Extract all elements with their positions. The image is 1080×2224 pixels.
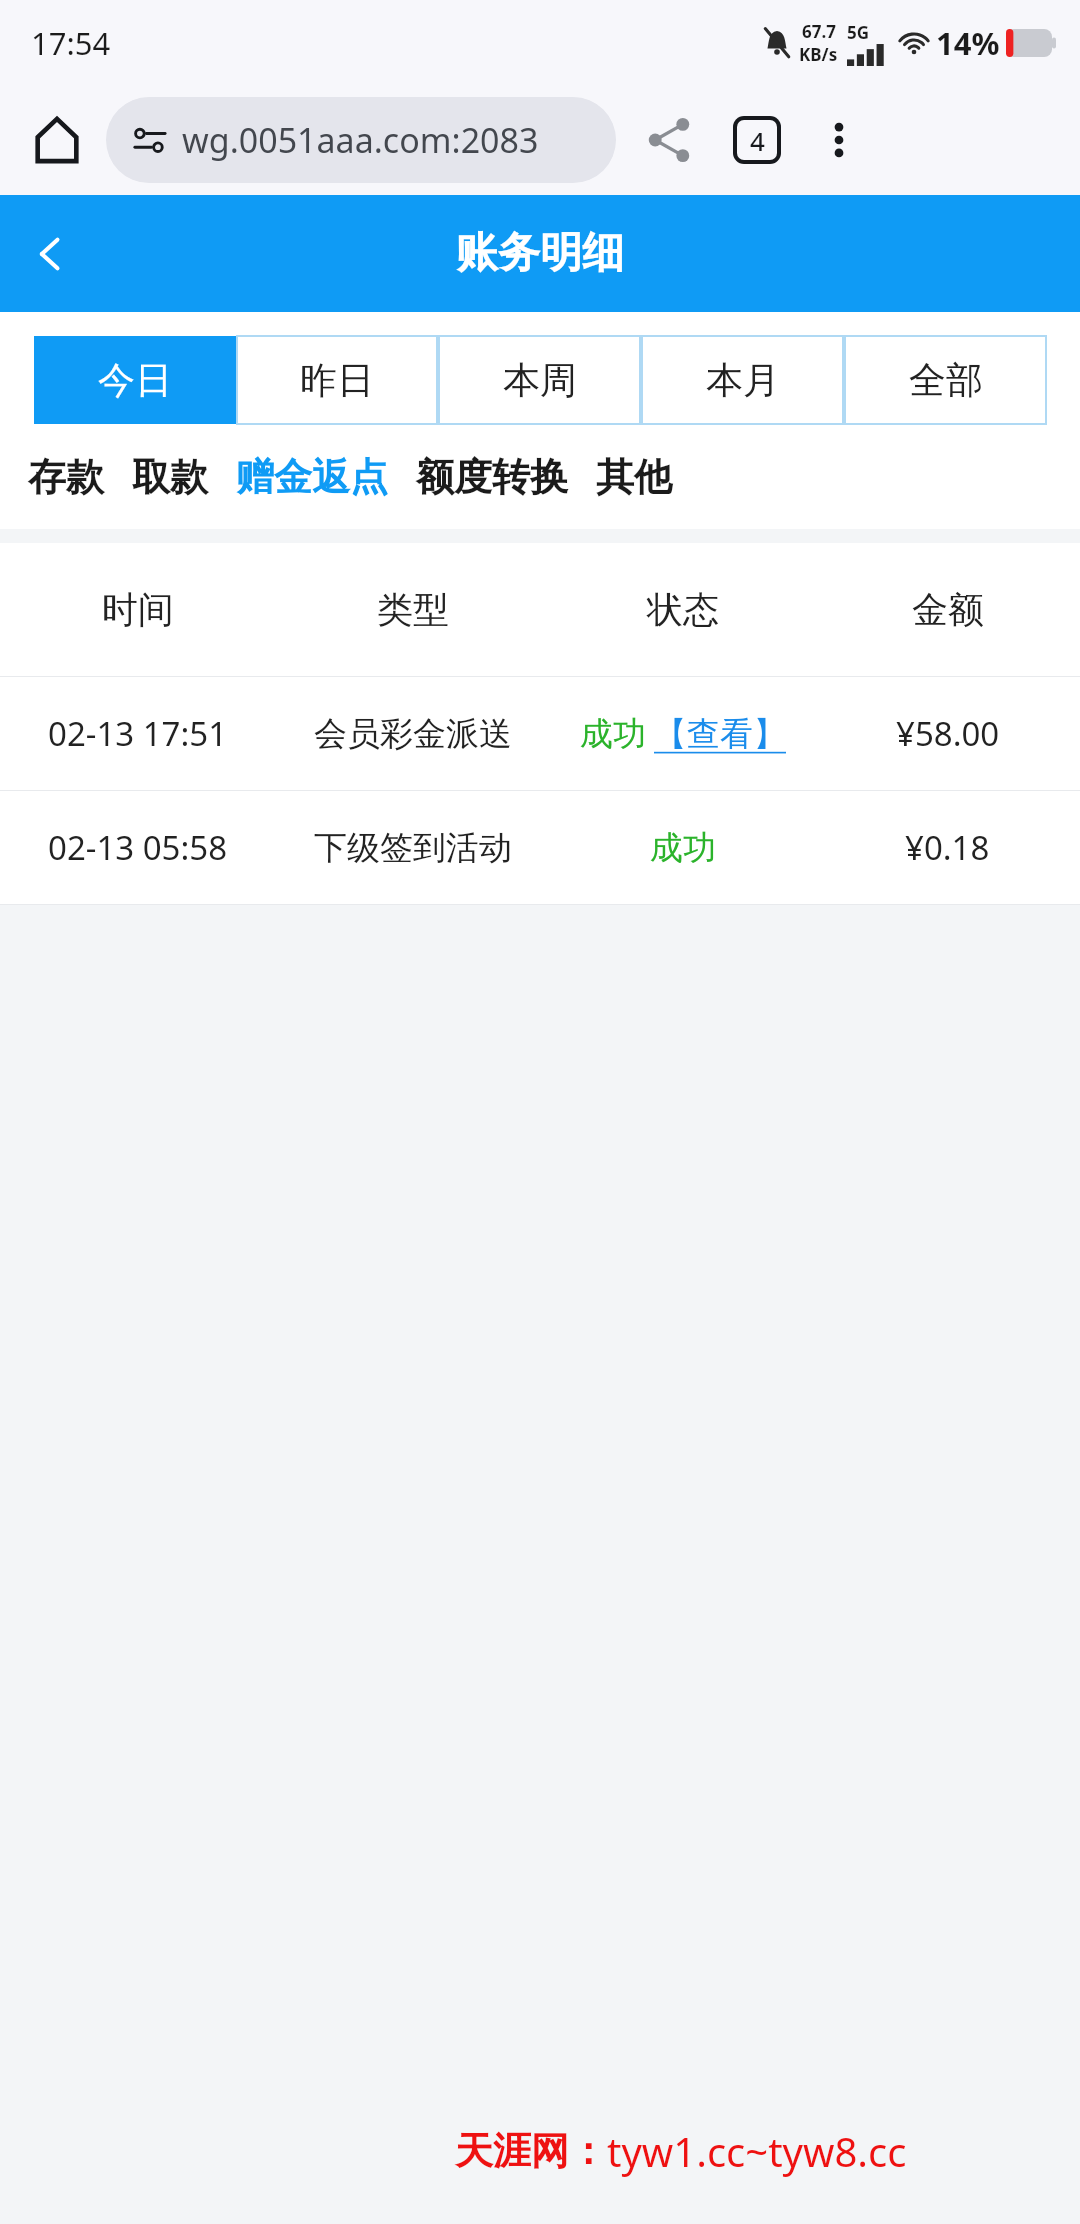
- staticText: 状态: [647, 587, 719, 632]
- button[interactable]: 02-13 17:51: [0, 677, 1080, 790]
- button[interactable]: 本月: [641, 336, 844, 424]
- button[interactable]: 全部: [844, 336, 1047, 424]
- staticText: ¥58.00: [896, 711, 1000, 756]
- button[interactable]: 今日: [34, 336, 236, 424]
- button[interactable]: Home: [20, 103, 94, 177]
- staticText: 成功: [650, 827, 716, 869]
- staticText: 67.7: [802, 20, 836, 43]
- button[interactable]: 取款: [118, 445, 222, 509]
- staticText: 会员彩金派送: [314, 713, 512, 755]
- staticText: 天涯网：: [455, 2127, 607, 2175]
- button[interactable]: Tabs: [718, 101, 796, 179]
- staticText: wg.0051aaa.com:2083: [182, 117, 539, 163]
- staticText: 02-13 05:58: [48, 825, 228, 870]
- staticText: 存款: [28, 453, 104, 501]
- staticText: 【查看】: [654, 713, 786, 755]
- staticText: 14%: [936, 22, 1000, 64]
- staticText: 账务明细: [456, 227, 624, 280]
- staticText: 成功: [580, 713, 646, 755]
- button[interactable]: 【查看】: [654, 713, 786, 755]
- button[interactable]: 额度转换: [402, 445, 582, 509]
- staticText: 今日: [98, 357, 172, 404]
- staticText: 4: [750, 123, 765, 158]
- button[interactable]: 本周: [438, 336, 641, 424]
- staticText: 本周: [503, 357, 577, 404]
- button[interactable]: 昨日: [236, 336, 438, 424]
- staticText: 金额: [912, 587, 984, 632]
- button[interactable]: Share: [630, 101, 708, 179]
- staticText: 取款: [132, 453, 208, 501]
- staticText: 赠金返点: [236, 453, 388, 501]
- staticText: 5G: [847, 21, 870, 44]
- button[interactable]: 赠金返点: [222, 445, 402, 509]
- button[interactable]: 存款: [14, 445, 118, 509]
- staticText: 昨日: [300, 357, 374, 404]
- staticText: KB/s: [799, 43, 838, 66]
- staticText: 17:54: [31, 22, 111, 64]
- button[interactable]: Back: [0, 204, 100, 304]
- button[interactable]: wg.0051aaa.com:2083: [106, 97, 616, 183]
- staticText: ¥0.18: [905, 825, 990, 870]
- staticText: 本月: [706, 357, 780, 404]
- staticText: 时间: [102, 587, 174, 632]
- button[interactable]: 其他: [582, 445, 686, 509]
- staticText: tyw1.cc~tyw8.cc: [607, 2124, 907, 2178]
- staticText: 额度转换: [416, 453, 568, 501]
- staticText: 全部: [909, 357, 983, 404]
- button[interactable]: 02-13 05:58: [0, 791, 1080, 904]
- staticText: 其他: [596, 453, 672, 501]
- staticText: 类型: [377, 587, 449, 632]
- button[interactable]: More options: [804, 105, 874, 175]
- staticText: 02-13 17:51: [48, 711, 228, 756]
- staticText: 下级签到活动: [314, 827, 512, 869]
